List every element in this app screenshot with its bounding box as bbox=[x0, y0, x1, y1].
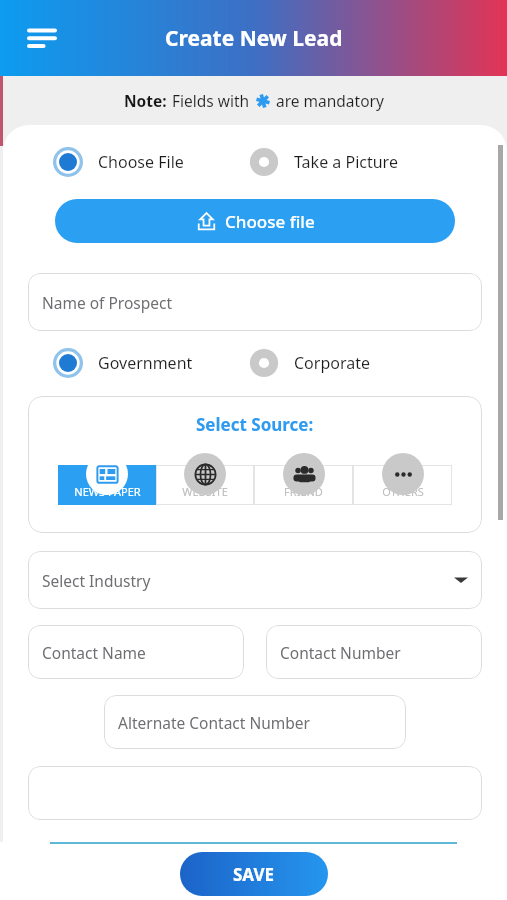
button[interactable]: Contact Number bbox=[266, 625, 482, 679]
staticText: Select Source: bbox=[196, 413, 314, 436]
button[interactable]: Select Industry bbox=[28, 551, 482, 609]
staticText: Create New Lead bbox=[165, 24, 343, 53]
staticText: Contact Number bbox=[280, 642, 401, 663]
staticText: OTHERS bbox=[382, 484, 424, 499]
staticText: Choose File bbox=[98, 151, 184, 173]
button[interactable]: Menu bbox=[18, 14, 66, 62]
staticText: Corporate bbox=[294, 352, 370, 374]
staticText: SAVE bbox=[233, 863, 275, 886]
staticText: FRIEND bbox=[284, 484, 323, 499]
staticText: Choose file bbox=[225, 210, 315, 233]
button[interactable]: FRIEND bbox=[254, 463, 353, 505]
staticText: Government bbox=[98, 352, 193, 374]
button[interactable]: Contact Name bbox=[28, 625, 244, 679]
button[interactable]: OTHERS bbox=[353, 463, 452, 505]
button[interactable]: Alternate Contact Number bbox=[104, 695, 406, 749]
button[interactable] bbox=[28, 766, 482, 820]
staticText: Select Industry bbox=[42, 570, 151, 591]
staticText: Fields with bbox=[172, 90, 250, 111]
button[interactable]: Name of Prospect bbox=[28, 273, 482, 331]
button[interactable]: SAVE bbox=[180, 852, 328, 896]
button[interactable]: Government bbox=[53, 348, 249, 378]
staticText: Alternate Contact Number bbox=[118, 712, 310, 733]
staticText: Note: bbox=[124, 90, 167, 111]
button[interactable]: NEWS PAPER bbox=[58, 463, 156, 505]
button[interactable]: Take a Picture bbox=[249, 147, 489, 177]
staticText: are mandatory bbox=[276, 90, 384, 111]
button[interactable]: Choose file bbox=[55, 199, 455, 243]
staticText: WEBSITE bbox=[182, 484, 228, 499]
button[interactable]: Choose File bbox=[53, 147, 249, 177]
staticText: Name of Prospect bbox=[42, 292, 173, 313]
staticText: Contact Name bbox=[42, 642, 146, 663]
staticText: NEWS PAPER bbox=[74, 484, 141, 499]
staticText: Take a Picture bbox=[294, 151, 398, 173]
button[interactable]: Corporate bbox=[249, 348, 489, 378]
button[interactable]: WEBSITE bbox=[156, 463, 254, 505]
